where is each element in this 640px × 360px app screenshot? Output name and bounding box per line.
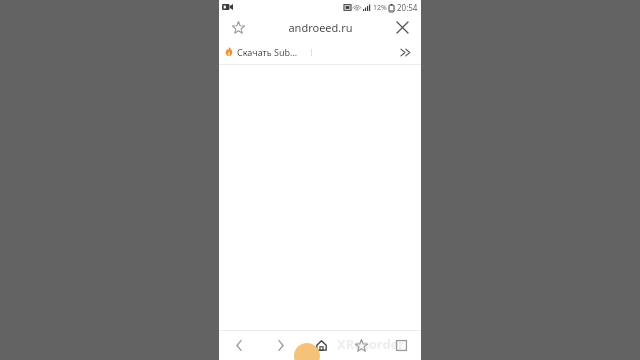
button[interactable]: Bookmark: [227, 16, 249, 38]
staticText: androeed.ru: [288, 20, 353, 35]
staticText: 20:54: [397, 2, 418, 13]
button[interactable]: Forward: [260, 331, 301, 360]
button[interactable]: Tabs: [381, 331, 421, 360]
button[interactable]: More bookmarks: [397, 42, 415, 62]
button[interactable]: Close: [391, 16, 413, 38]
staticText: Скачать Sub...: [237, 46, 298, 58]
button[interactable]: Скачать Sub...: [225, 46, 298, 58]
button[interactable]: Back: [219, 331, 260, 360]
button[interactable]: Home: [301, 331, 341, 360]
button[interactable]: Bookmarks: [341, 331, 381, 360]
staticText: 12%: [373, 3, 387, 13]
staticText: XRecorder: [337, 335, 405, 353]
